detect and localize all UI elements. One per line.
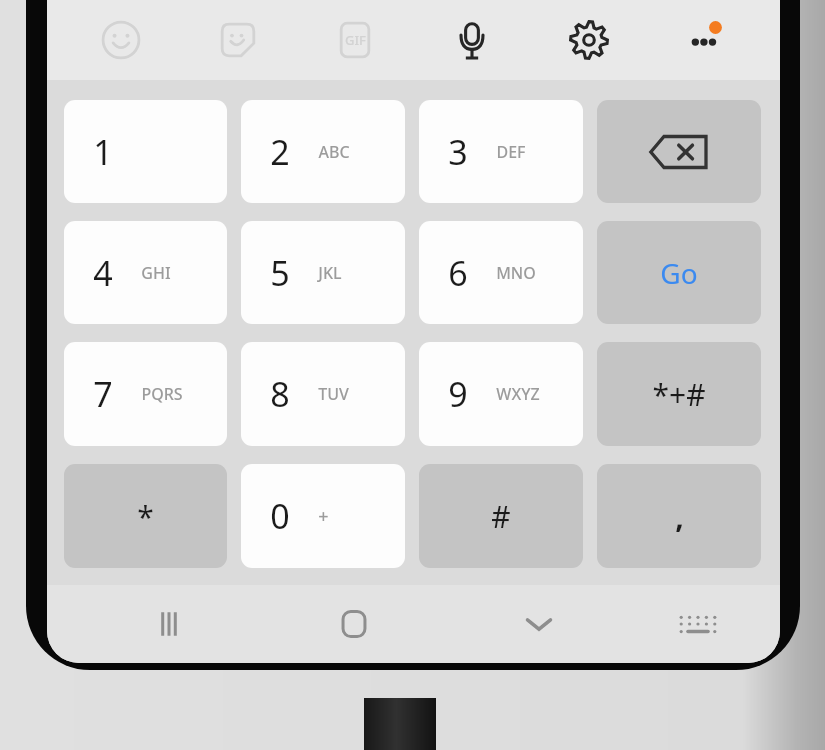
staticText: + <box>318 504 329 529</box>
button[interactable]: Home <box>261 585 446 663</box>
button[interactable]: # <box>419 464 583 568</box>
button[interactable]: 3 <box>419 100 583 203</box>
button[interactable]: Hide keyboard <box>446 585 631 663</box>
staticText: PQRS <box>141 383 183 405</box>
staticText: MNO <box>496 262 536 284</box>
staticText: 2 <box>270 129 290 175</box>
button[interactable]: Backspace <box>597 100 761 203</box>
staticText: , <box>675 496 684 537</box>
staticText: JKL <box>318 262 342 284</box>
staticText: ABC <box>318 141 350 163</box>
staticText: 5 <box>270 250 290 296</box>
button[interactable]: More options <box>647 0 764 80</box>
staticText: 6 <box>448 250 468 296</box>
staticText: 0 <box>270 493 290 539</box>
staticText: GHI <box>141 262 171 284</box>
staticText: DEF <box>496 141 526 163</box>
button[interactable]: Recent apps <box>77 585 261 663</box>
staticText: WXYZ <box>496 383 540 405</box>
button[interactable]: 4 <box>64 221 227 324</box>
staticText: TUV <box>318 383 349 405</box>
staticText: 1 <box>93 129 113 175</box>
button[interactable]: *+# <box>597 342 761 446</box>
button[interactable]: 7 <box>64 342 227 446</box>
button[interactable]: 9 <box>419 342 583 446</box>
staticText: GIF <box>345 31 366 49</box>
button[interactable]: , <box>597 464 761 568</box>
staticText: # <box>491 496 511 537</box>
button[interactable]: Change keyboard <box>631 585 764 663</box>
staticText: 4 <box>93 250 113 296</box>
staticText: *+# <box>652 374 706 415</box>
button[interactable]: 1 <box>64 100 227 203</box>
button[interactable]: Settings <box>530 0 647 80</box>
staticText: 3 <box>448 129 468 175</box>
button[interactable]: 2 <box>241 100 405 203</box>
button[interactable]: 0 <box>241 464 405 568</box>
button[interactable]: Emoji <box>63 0 179 80</box>
staticText: * <box>137 496 154 537</box>
button[interactable]: * <box>64 464 227 568</box>
button[interactable]: 6 <box>419 221 583 324</box>
button[interactable]: Voice input <box>413 0 530 80</box>
button[interactable]: Go <box>597 221 761 324</box>
button[interactable]: GIF <box>296 0 413 80</box>
button[interactable]: 8 <box>241 342 405 446</box>
button[interactable]: 5 <box>241 221 405 324</box>
button[interactable]: Stickers <box>179 0 296 80</box>
staticText: 8 <box>270 371 290 417</box>
staticText: Go <box>660 254 698 292</box>
staticText: 7 <box>93 371 113 417</box>
staticText: 9 <box>448 371 468 417</box>
